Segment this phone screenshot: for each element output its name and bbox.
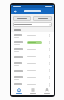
button[interactable]: Home bbox=[12, 87, 25, 95]
button[interactable] bbox=[11, 67, 54, 74]
button[interactable] bbox=[11, 81, 54, 87]
button[interactable]: Select filter bbox=[13, 22, 52, 27]
button[interactable] bbox=[11, 53, 54, 60]
button[interactable] bbox=[11, 74, 54, 81]
button[interactable]: List bbox=[26, 87, 39, 95]
button[interactable] bbox=[11, 46, 54, 53]
button[interactable] bbox=[13, 16, 31, 21]
button[interactable] bbox=[11, 39, 54, 46]
button[interactable] bbox=[33, 16, 52, 21]
button[interactable] bbox=[11, 32, 54, 39]
button[interactable] bbox=[11, 60, 54, 67]
button[interactable]: Profile bbox=[40, 87, 53, 95]
button[interactable]: Back bbox=[13, 9, 17, 13]
